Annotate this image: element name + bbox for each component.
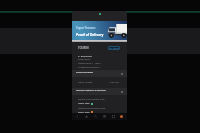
staticText: ALL TOURS (109, 47, 119, 50)
button[interactable]: ALL TOURS (108, 46, 120, 50)
staticText: TOUR TRACKING (76, 71, 94, 74)
button[interactable]: Profile (120, 115, 123, 118)
staticText: Filiale Berlin (78, 58, 91, 61)
staticText: 12:45 Uhr (109, 81, 120, 84)
staticText: Proof of Delivery (76, 32, 104, 36)
staticText: Vehicle Unload Date & Time (78, 107, 106, 110)
button[interactable]: More (111, 114, 116, 119)
button[interactable]: Messages (102, 114, 107, 119)
staticText: Status Update (78, 81, 93, 84)
staticText: TOUREN (78, 46, 89, 50)
staticText: Select Date (78, 102, 90, 105)
staticText: E. BRENNER (78, 54, 92, 57)
staticText: Anlieferung Rampe 3 (78, 66, 100, 69)
staticText: SuperTracom (76, 26, 96, 30)
staticText: VEHICLE ARRIVAL & UNLOAD (76, 89, 106, 92)
staticText: Vehicle Arrival Date & Time (78, 98, 105, 101)
button[interactable]: TOUR TRACKING (72, 70, 127, 77)
button[interactable]: Back (75, 114, 80, 119)
staticText: Hauptstrasse 1, 10961 (78, 62, 101, 65)
button[interactable]: VEHICLE ARRIVAL & UNLOAD (72, 88, 127, 95)
button[interactable]: Home (84, 114, 89, 119)
button[interactable]: Search (93, 114, 98, 119)
staticText: Select Date (78, 111, 90, 113)
